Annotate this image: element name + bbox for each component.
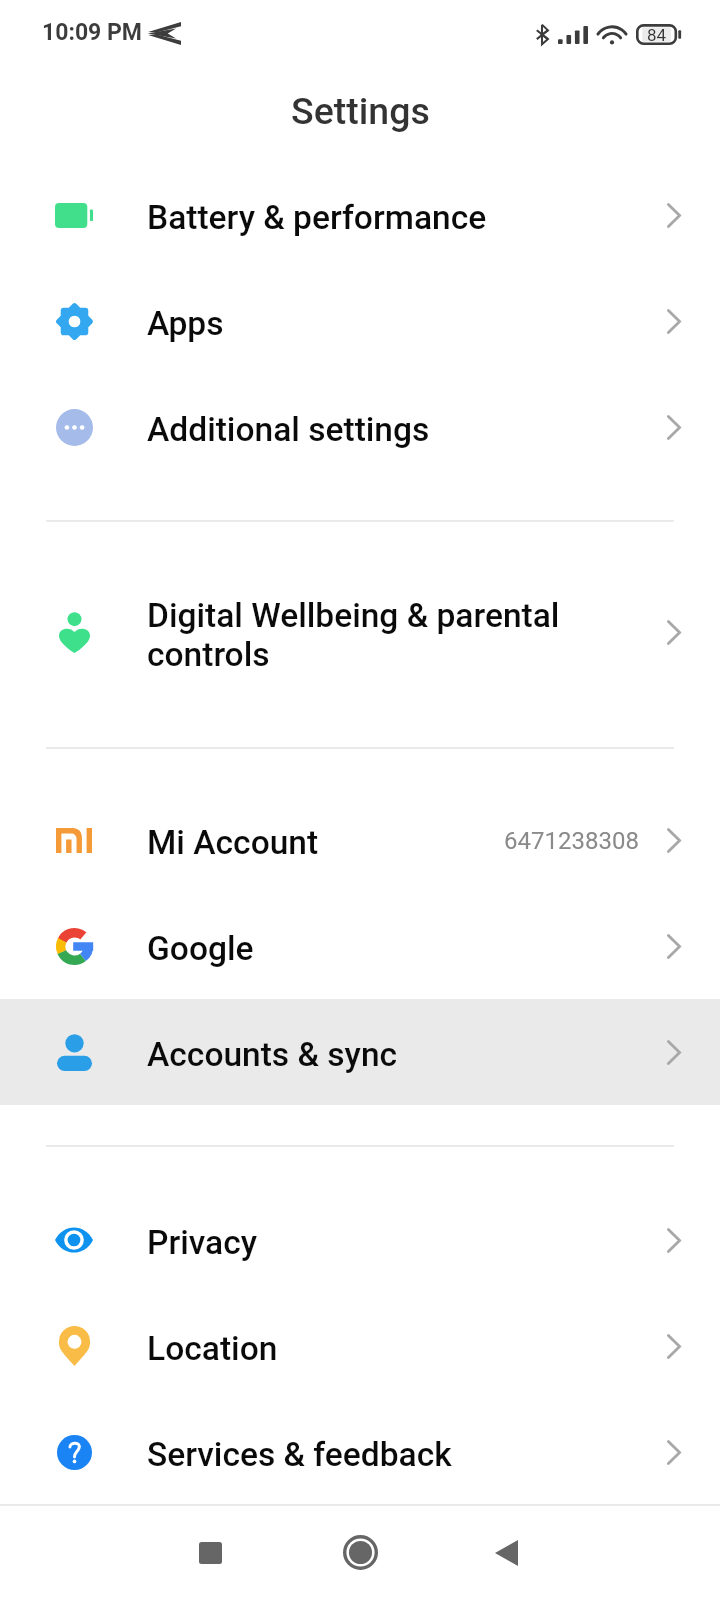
- button[interactable]: Apps: [0, 268, 720, 374]
- staticText: 6471238308: [504, 827, 639, 855]
- staticText: 10:09 PM: [42, 19, 142, 46]
- staticText: Services & feedback: [147, 1435, 452, 1474]
- staticText: Apps: [147, 304, 224, 343]
- staticText: Additional settings: [147, 410, 430, 449]
- staticText: 84: [647, 25, 667, 45]
- button[interactable]: Battery & performance: [0, 162, 720, 268]
- staticText: Location: [147, 1329, 278, 1368]
- staticText: Google: [147, 929, 254, 968]
- button[interactable]: Back: [458, 1505, 554, 1600]
- staticText: Settings: [291, 89, 430, 133]
- button[interactable]: Services & feedback: [0, 1399, 720, 1505]
- button[interactable]: Recent apps: [163, 1505, 258, 1600]
- button[interactable]: Google: [0, 893, 720, 999]
- staticText: Battery & performance: [147, 198, 487, 237]
- staticText: Digital Wellbeing & parental controls: [147, 596, 560, 674]
- staticText: Privacy: [147, 1223, 258, 1262]
- button[interactable]: Digital Wellbeing & parental controls: [0, 578, 720, 686]
- button[interactable]: Privacy: [0, 1187, 720, 1293]
- staticText: Accounts & sync: [147, 1035, 398, 1074]
- staticText: Mi Account: [147, 823, 319, 862]
- button[interactable]: Location: [0, 1293, 720, 1399]
- button[interactable]: Accounts & sync: [0, 999, 720, 1105]
- button[interactable]: Home: [312, 1505, 408, 1600]
- button[interactable]: Mi Account: [0, 787, 720, 893]
- button[interactable]: Additional settings: [0, 374, 720, 480]
